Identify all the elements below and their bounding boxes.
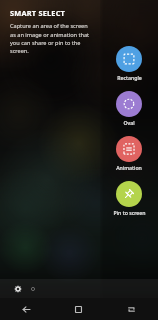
button[interactable]: Recent apps (105, 298, 158, 320)
staticText: SMART SELECT (10, 8, 66, 18)
staticText: Animation (116, 164, 142, 171)
staticText: Capture an area of the screen as an imag… (10, 22, 94, 54)
staticText: Rectangle (117, 74, 142, 81)
button[interactable]: Settings (11, 282, 24, 295)
staticText: Pin to screen (113, 209, 146, 216)
button[interactable]: Oval (101, 91, 157, 126)
staticText: Oval (123, 119, 135, 126)
button[interactable]: Rectangle (101, 46, 157, 81)
button[interactable]: Back (0, 298, 52, 320)
button[interactable]: Home (52, 298, 105, 320)
button[interactable]: Animation (101, 136, 157, 171)
button[interactable]: Pin to screen (101, 181, 157, 216)
